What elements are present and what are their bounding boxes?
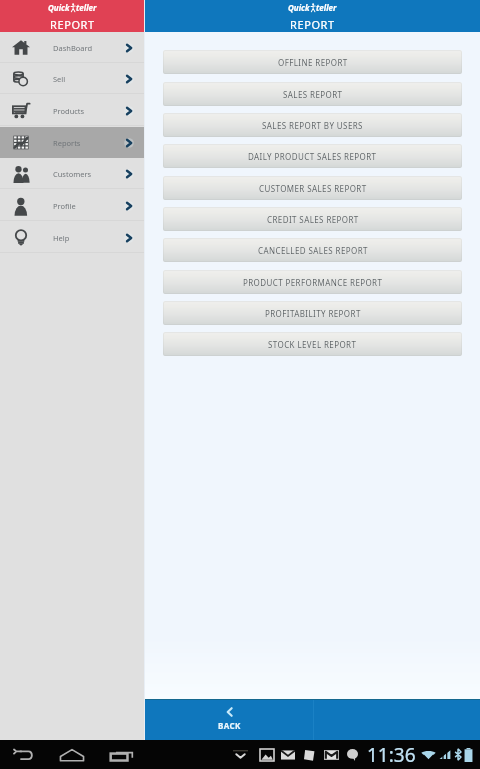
staticText: PROFITABILITY REPORT [265, 308, 361, 319]
staticText: STOCK LEVEL REPORT [268, 339, 357, 350]
staticText: Reports [53, 138, 81, 148]
button[interactable]: DashBoard [0, 32, 144, 63]
button[interactable]: Customers [0, 158, 144, 189]
button[interactable]: PRODUCT PERFORMANCE REPORT [163, 270, 462, 294]
staticText: BACK [218, 720, 241, 731]
staticText: OFFLINE REPORT [278, 57, 348, 68]
button[interactable]: Products [0, 95, 144, 126]
button[interactable]: Recent apps [103, 740, 139, 769]
staticText: teller [76, 2, 97, 13]
staticText: CANCELLED SALES REPORT [258, 245, 368, 256]
staticText: REPORT [50, 17, 95, 32]
button[interactable]: OFFLINE REPORT [163, 50, 462, 74]
staticText: Profile [53, 201, 76, 211]
button[interactable]: PROFITABILITY REPORT [163, 301, 462, 325]
staticText: CREDIT SALES REPORT [267, 214, 359, 225]
button[interactable]: Reports [0, 127, 144, 158]
button[interactable]: STOCK LEVEL REPORT [163, 332, 462, 356]
staticText: Quick [48, 2, 70, 13]
staticText: Customers [53, 169, 92, 179]
staticText: Quick [288, 2, 310, 13]
button[interactable]: Profile [0, 190, 144, 221]
button[interactable]: CREDIT SALES REPORT [163, 207, 462, 231]
staticText: PRODUCT PERFORMANCE REPORT [243, 277, 383, 288]
staticText: CUSTOMER SALES REPORT [259, 183, 367, 194]
button[interactable]: Sell [0, 63, 144, 94]
staticText: SALES REPORT [283, 89, 343, 100]
staticText: SALES REPORT BY USERS [262, 120, 363, 131]
staticText: DAILY PRODUCT SALES REPORT [248, 151, 377, 162]
staticText: DashBoard [53, 43, 93, 53]
button[interactable]: SALES REPORT BY USERS [163, 113, 462, 137]
staticText: REPORT [290, 17, 335, 32]
button[interactable]: DAILY PRODUCT SALES REPORT [163, 144, 462, 168]
button[interactable]: SALES REPORT [163, 82, 462, 106]
button[interactable]: CANCELLED SALES REPORT [163, 238, 462, 262]
button[interactable]: Help [0, 222, 144, 253]
staticText: Help [53, 233, 70, 243]
button[interactable]: Back [6, 740, 42, 769]
staticText: teller [316, 2, 337, 13]
staticText: Sell [53, 74, 66, 84]
button[interactable]: CUSTOMER SALES REPORT [163, 176, 462, 200]
button[interactable]: BACK [145, 700, 313, 740]
staticText: Products [53, 106, 85, 116]
staticText: 11:36 [367, 742, 416, 768]
button[interactable]: Home [54, 740, 90, 769]
